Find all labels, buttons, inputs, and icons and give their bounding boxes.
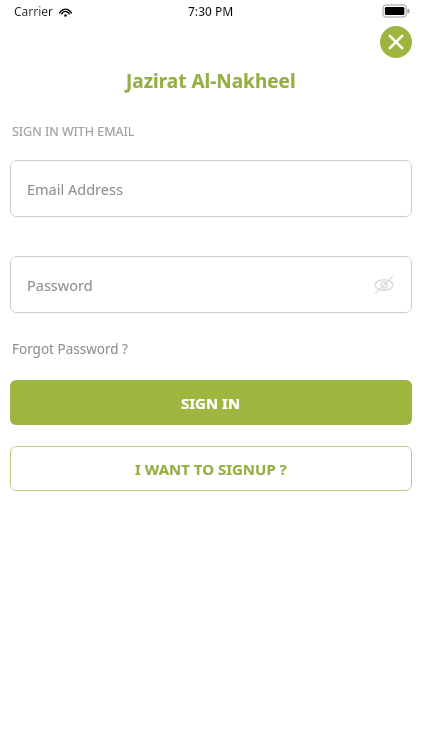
button[interactable]: SIGN IN: [10, 380, 412, 425]
staticText: SIGN IN WITH EMAIL: [12, 123, 135, 140]
staticText: Email Address: [27, 179, 123, 199]
staticText: Jazirat Al-Nakheel: [126, 68, 296, 94]
staticText: Password: [27, 275, 93, 295]
staticText: Forgot Password ?: [12, 340, 128, 358]
button[interactable]: Forgot Password ?: [12, 340, 128, 358]
button[interactable]: Email Address: [10, 160, 412, 217]
staticText: 7:30 PM: [188, 3, 234, 19]
button[interactable]: Password: [10, 256, 412, 313]
button[interactable]: Show password: [370, 271, 398, 299]
staticText: SIGN IN: [181, 393, 241, 413]
button[interactable]: I WANT TO SIGNUP ?: [10, 446, 412, 491]
staticText: I WANT TO SIGNUP ?: [135, 459, 287, 479]
staticText: Carrier: [14, 3, 54, 19]
button[interactable]: Close: [380, 26, 412, 58]
